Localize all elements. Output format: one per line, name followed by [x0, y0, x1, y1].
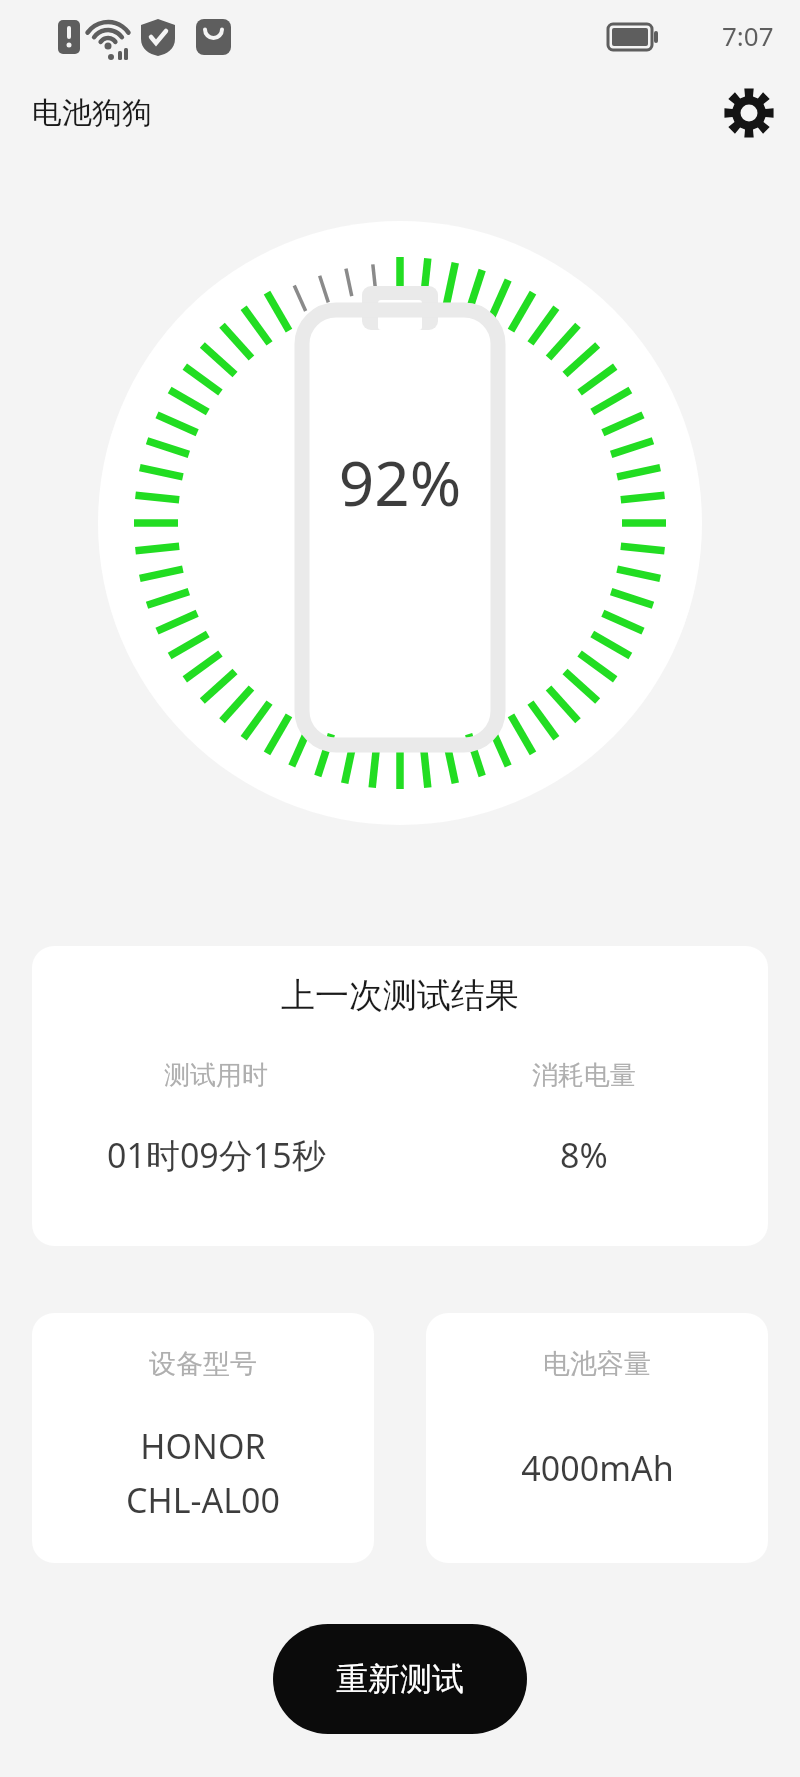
- staticText: 电池狗狗: [32, 94, 152, 132]
- staticText: 01时09分15秒: [107, 1132, 326, 1178]
- staticText: 测试用时: [164, 1059, 268, 1092]
- staticText: 重新测试: [336, 1659, 464, 1699]
- button[interactable]: 电池容量: [426, 1313, 768, 1563]
- staticText: 7:07: [722, 18, 774, 53]
- staticText: 92%: [0, 440, 800, 524]
- staticText: HONOR: [140, 1423, 266, 1469]
- staticText: CHL-AL00: [126, 1477, 280, 1523]
- staticText: 上一次测试结果: [32, 974, 768, 1017]
- staticText: 4000mAh: [521, 1445, 674, 1491]
- staticText: 消耗电量: [532, 1059, 636, 1092]
- staticText: 设备型号: [149, 1347, 257, 1381]
- button[interactable]: Settings: [720, 84, 778, 142]
- staticText: 8%: [560, 1132, 608, 1178]
- staticText: 电池容量: [543, 1347, 651, 1381]
- button[interactable]: 重新测试: [273, 1624, 527, 1734]
- button[interactable]: 设备型号: [32, 1313, 374, 1563]
- button[interactable]: 上一次测试结果: [32, 946, 768, 1246]
